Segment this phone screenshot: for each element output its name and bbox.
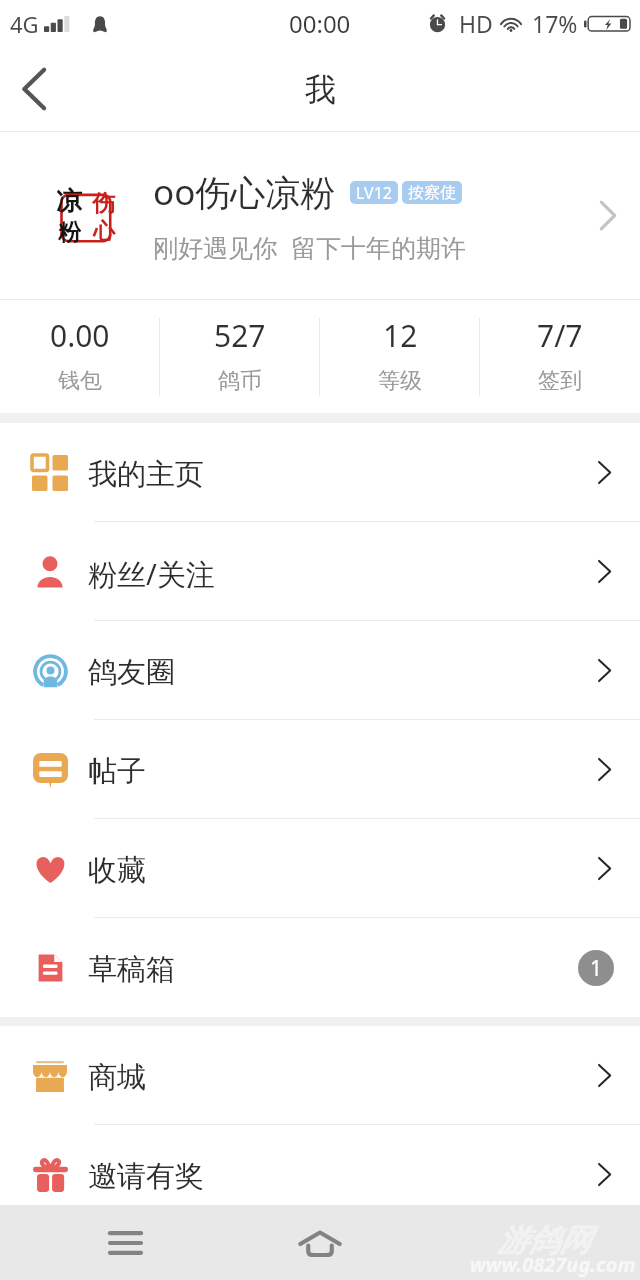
button[interactable]: Menu xyxy=(88,1206,162,1280)
staticText: 签到 xyxy=(538,367,582,395)
staticText: 收藏 xyxy=(88,852,598,889)
staticText: 4G xyxy=(10,9,39,39)
button[interactable]: 鸽友圈 xyxy=(0,621,640,720)
staticText: 凉 xyxy=(56,185,82,218)
staticText: 伤 xyxy=(92,189,115,218)
staticText: 1 xyxy=(590,954,603,983)
staticText: 心 xyxy=(93,218,115,246)
staticText: 商城 xyxy=(88,1059,598,1096)
button[interactable]: 12 xyxy=(320,300,480,413)
staticText: 0.00 xyxy=(50,315,110,356)
button[interactable]: 我的主页 xyxy=(0,423,640,522)
staticText: www.0827ug.com xyxy=(470,1251,636,1278)
staticText: 鸽币 xyxy=(218,367,262,395)
button[interactable]: 收藏 xyxy=(0,819,640,918)
button[interactable]: Back xyxy=(2,57,66,121)
button[interactable]: 邀请有奖 xyxy=(0,1125,640,1224)
button[interactable]: 527 xyxy=(160,300,320,413)
button[interactable]: 帖子 xyxy=(0,720,640,819)
staticText: 鸽友圈 xyxy=(88,654,598,691)
staticText: 7/7 xyxy=(537,315,583,356)
staticText: 我的主页 xyxy=(88,456,598,493)
button[interactable]: Home xyxy=(283,1206,357,1280)
staticText: 00:00 xyxy=(289,7,351,40)
button[interactable]: 草稿箱 xyxy=(0,918,640,1017)
button[interactable]: 0.00 xyxy=(0,300,160,413)
staticText: 按察使 xyxy=(408,183,456,203)
staticText: 我 xyxy=(305,70,336,109)
staticText: 17% xyxy=(532,8,578,39)
staticText: 帖子 xyxy=(88,753,598,790)
staticText: 12 xyxy=(383,315,418,356)
staticText: 527 xyxy=(214,315,266,356)
staticText: 邀请有奖 xyxy=(88,1158,598,1195)
staticText: oo伤心凉粉 xyxy=(153,168,336,216)
button[interactable]: 7/7 xyxy=(480,300,640,413)
button[interactable]: 伤 xyxy=(0,132,640,299)
staticText: 草稿箱 xyxy=(88,951,575,988)
staticText: 刚好遇见你 留下十年的期许 xyxy=(153,230,467,264)
staticText: 游鸽网 xyxy=(497,1221,590,1260)
staticText: 粉丝/关注 xyxy=(88,554,598,594)
staticText: 粉 xyxy=(58,218,81,243)
staticText: HD xyxy=(459,8,493,39)
staticText: 钱包 xyxy=(58,367,102,395)
staticText: LV12 xyxy=(356,182,392,204)
button[interactable]: 商城 xyxy=(0,1026,640,1125)
button[interactable]: 粉丝/关注 xyxy=(0,522,640,621)
staticText: 等级 xyxy=(378,367,422,395)
